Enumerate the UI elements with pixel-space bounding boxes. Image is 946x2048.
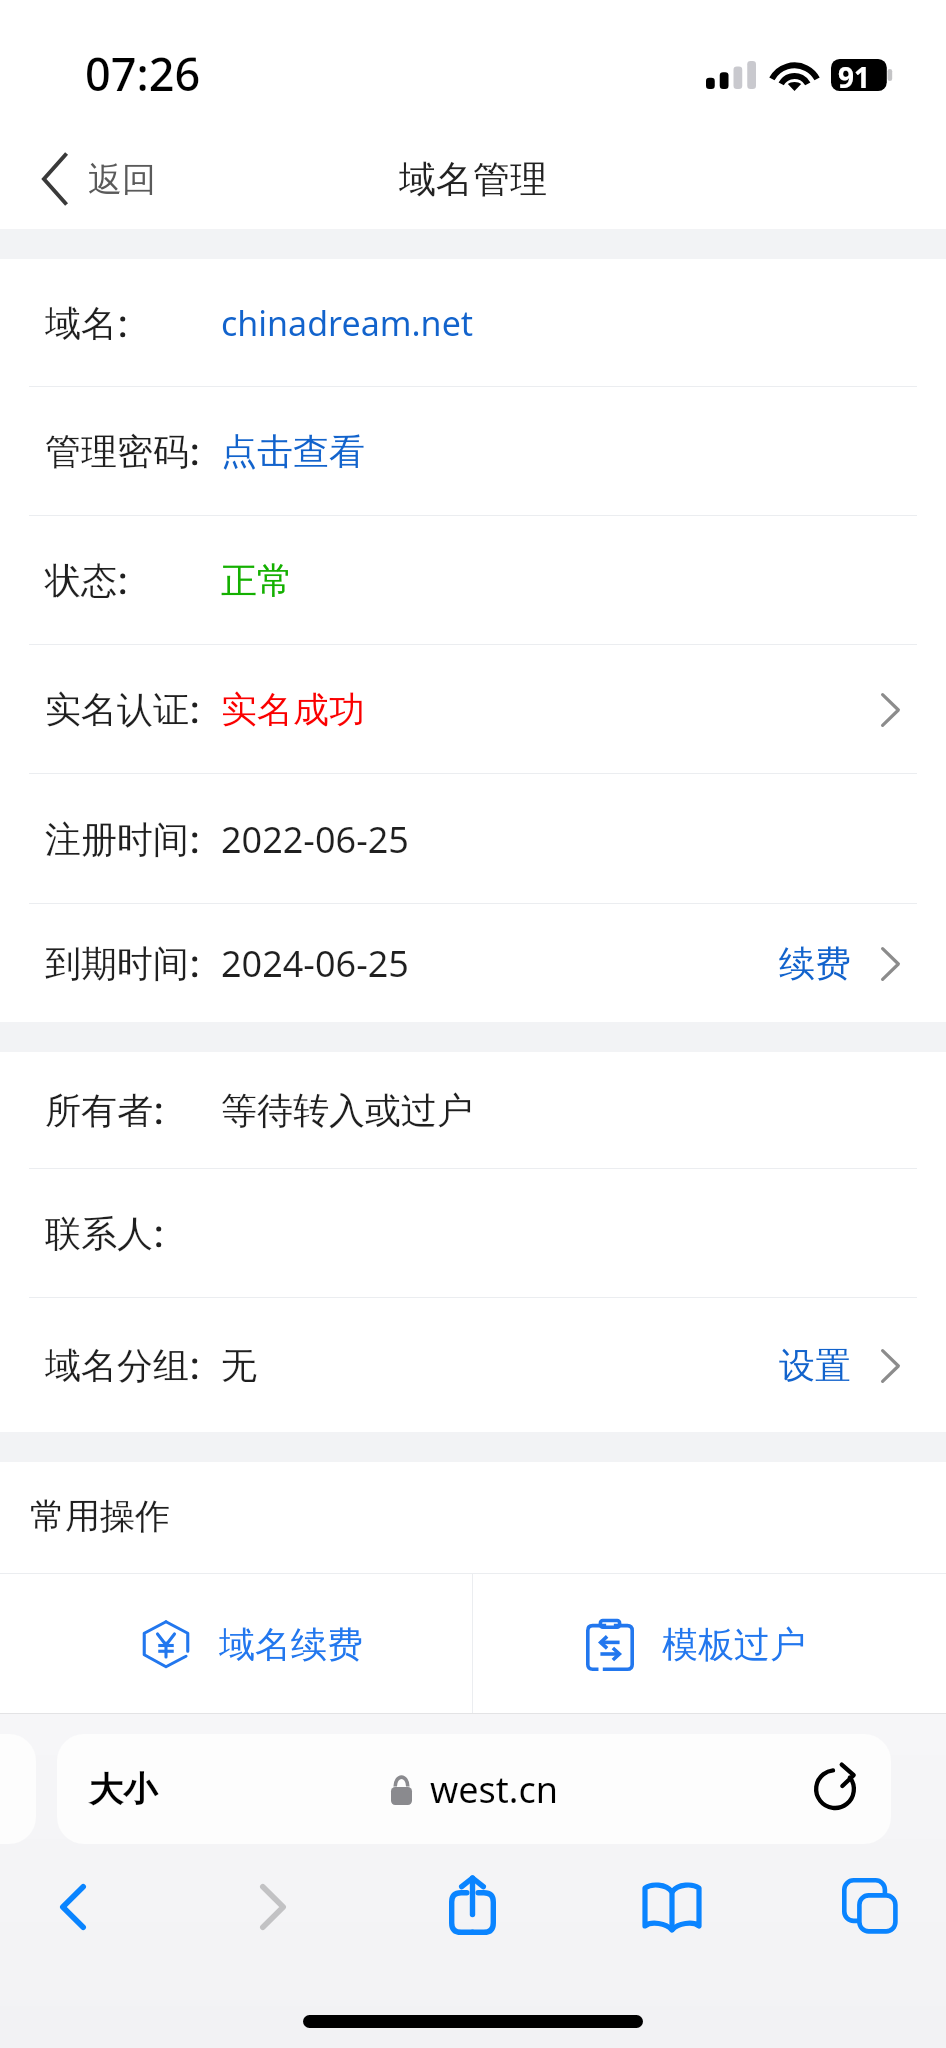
- staticText: 点击查看: [221, 429, 365, 474]
- staticText: 2024-06-25: [221, 939, 409, 988]
- staticText: 设置: [779, 1343, 851, 1388]
- button[interactable]: 域名分组: [0, 1298, 946, 1432]
- button[interactable]: 所有者: [0, 1052, 946, 1169]
- staticText: 正常: [221, 558, 293, 603]
- staticText: 91: [838, 58, 871, 90]
- button[interactable]: 返回: [0, 141, 180, 217]
- button[interactable]: 状态: [0, 516, 946, 645]
- button[interactable]: 设置: [779, 1325, 900, 1406]
- staticText: 2022-06-25: [221, 815, 409, 864]
- button[interactable]: Forward: [229, 1863, 317, 1951]
- staticText: 域名分组: [45, 1343, 189, 1388]
- button[interactable]: 到期时间: [0, 904, 946, 1022]
- staticText: chinadream.net: [221, 300, 474, 346]
- staticText: 续费: [779, 941, 851, 986]
- button[interactable]: Share: [428, 1863, 516, 1951]
- button[interactable]: 模板过户: [473, 1574, 946, 1713]
- staticText: 无: [221, 1343, 257, 1388]
- staticText: 大小: [89, 1768, 157, 1811]
- staticText: 状态: [45, 558, 117, 603]
- button[interactable]: 实名认证: [0, 645, 946, 774]
- staticText: 管理密码: [45, 429, 189, 474]
- button[interactable]: 大小: [57, 1734, 891, 1844]
- button[interactable]: 域名: [0, 259, 946, 387]
- button[interactable]: Bookmarks: [628, 1863, 716, 1951]
- button[interactable]: 联系人: [0, 1169, 946, 1298]
- button[interactable]: 管理密码: [0, 387, 946, 516]
- staticText: 到期时间: [45, 941, 189, 986]
- staticText: 返回: [88, 158, 156, 201]
- staticText: 域名管理: [399, 156, 547, 203]
- staticText: 实名认证: [45, 687, 189, 732]
- staticText: 常用操作: [30, 1494, 170, 1538]
- staticText: 实名成功: [221, 687, 365, 732]
- button[interactable]: Tabs: [827, 1863, 915, 1951]
- staticText: 模板过户: [662, 1622, 806, 1667]
- staticText: 域名: [45, 301, 117, 346]
- staticText: 注册时间: [45, 817, 189, 862]
- button[interactable]: 续费: [779, 923, 900, 1004]
- button[interactable]: 注册时间: [0, 774, 946, 904]
- staticText: west.cn: [430, 1765, 559, 1814]
- staticText: 07:26: [85, 43, 201, 104]
- button[interactable]: 域名续费: [0, 1574, 472, 1713]
- staticText: 所有者: [45, 1088, 153, 1133]
- staticText: 等待转入或过户: [221, 1088, 473, 1133]
- button[interactable]: Back: [29, 1863, 117, 1951]
- staticText: 联系人: [45, 1211, 153, 1256]
- staticText: 域名续费: [219, 1622, 363, 1667]
